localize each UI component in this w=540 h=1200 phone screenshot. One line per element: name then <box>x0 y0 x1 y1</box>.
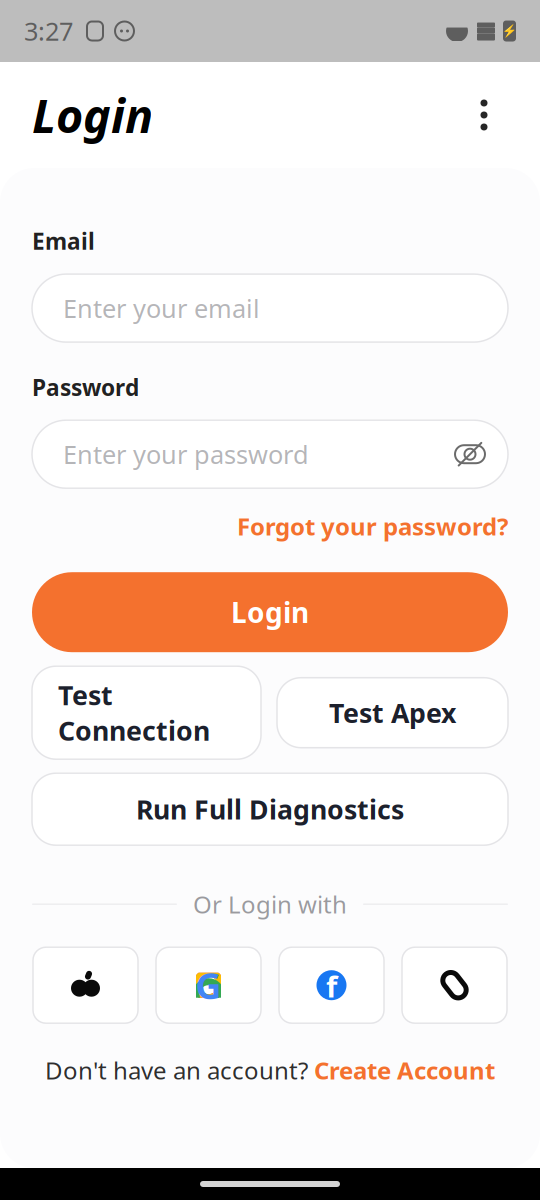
staticText: 3:27 <box>24 14 73 48</box>
staticText: Or Login with <box>193 888 347 920</box>
button[interactable]: Test Apex <box>277 678 508 748</box>
staticText: Enter your password <box>63 437 309 471</box>
button[interactable]: Sign in with Google <box>156 947 261 1023</box>
button[interactable]: Test Connection <box>32 666 261 759</box>
button[interactable]: Forgot your password? <box>32 506 508 546</box>
staticText: f <box>326 967 337 1006</box>
button[interactable]: Sign in with phone <box>402 947 507 1023</box>
staticText: Email <box>32 226 95 256</box>
staticText: Enter your email <box>63 291 260 325</box>
staticText: G <box>195 961 221 1009</box>
button[interactable]: More options <box>460 91 508 139</box>
button[interactable]: Sign in with Facebook <box>279 947 384 1023</box>
staticText: Create Account <box>314 1054 495 1086</box>
staticText: Login <box>32 84 153 146</box>
staticText: Password <box>32 372 139 402</box>
button[interactable]: Login <box>32 572 508 652</box>
staticText: Login <box>231 594 309 631</box>
staticText: Test Connection <box>58 677 210 748</box>
staticText: Forgot your password? <box>237 510 508 542</box>
staticText: Don't have an account? <box>45 1054 314 1086</box>
staticText: Test Apex <box>329 695 456 730</box>
staticText: Run Full Diagnostics <box>136 791 404 827</box>
button[interactable]: Create Account <box>314 1054 495 1086</box>
staticText: ⚡ <box>502 24 517 38</box>
button[interactable]: Sign in with Apple <box>33 947 138 1023</box>
button[interactable]: Run Full Diagnostics <box>32 773 508 845</box>
button[interactable]: Show password <box>448 432 492 476</box>
